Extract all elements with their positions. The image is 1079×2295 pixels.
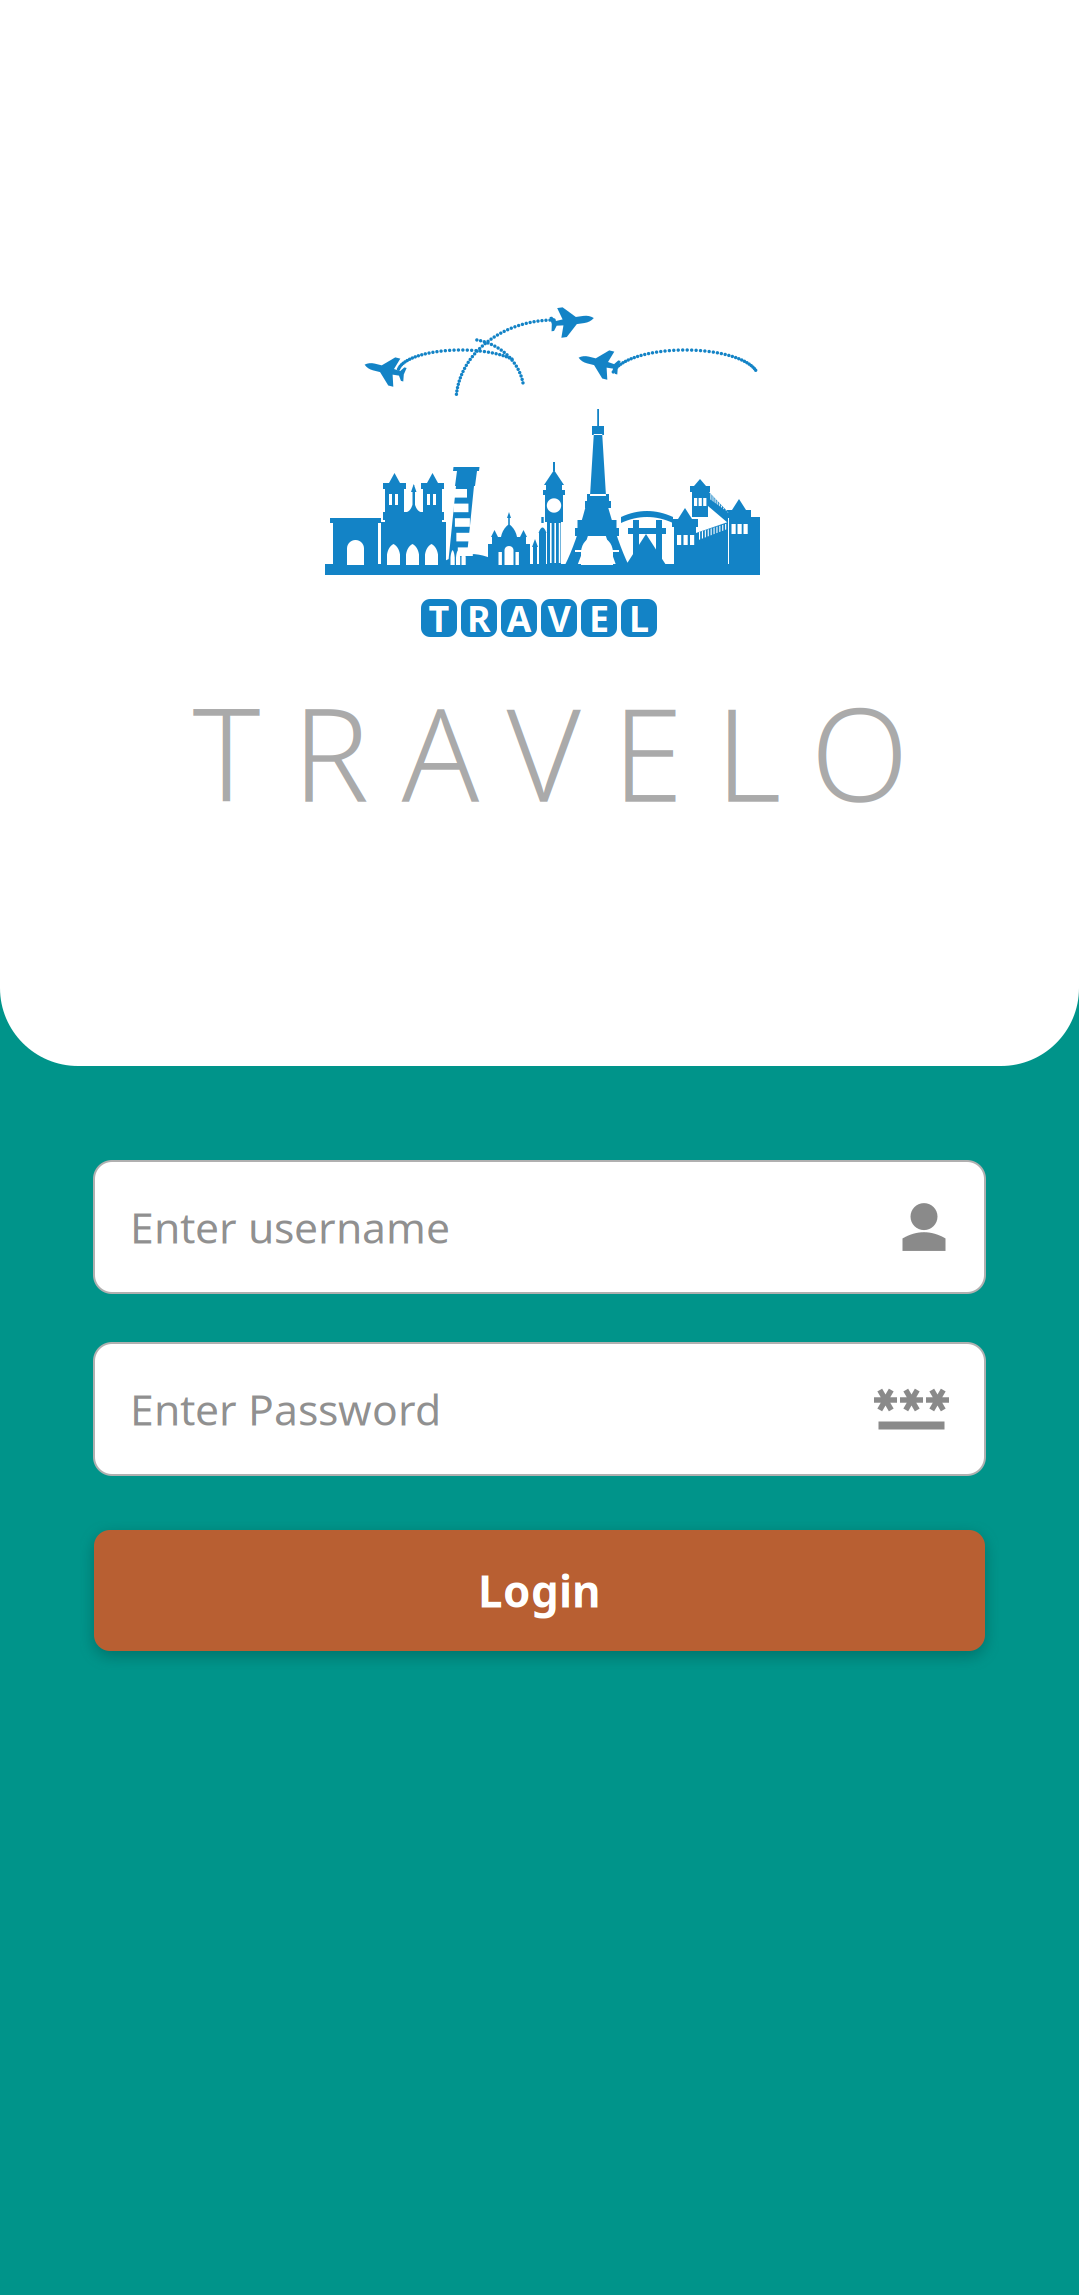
button[interactable]: Enter username bbox=[94, 1161, 985, 1293]
staticText: Enter username bbox=[130, 1199, 450, 1255]
staticText: L bbox=[629, 594, 649, 642]
button[interactable]: Login bbox=[94, 1530, 985, 1651]
staticText: T bbox=[428, 594, 449, 642]
button[interactable]: Enter Password bbox=[94, 1343, 985, 1475]
staticText: E bbox=[589, 594, 609, 642]
staticText: V bbox=[547, 594, 570, 642]
staticText: A bbox=[506, 594, 531, 642]
staticText: Enter Password bbox=[130, 1381, 441, 1437]
staticText: Login bbox=[478, 1561, 601, 1620]
staticText: R bbox=[467, 594, 491, 642]
staticText: TRAVELO bbox=[192, 667, 908, 837]
